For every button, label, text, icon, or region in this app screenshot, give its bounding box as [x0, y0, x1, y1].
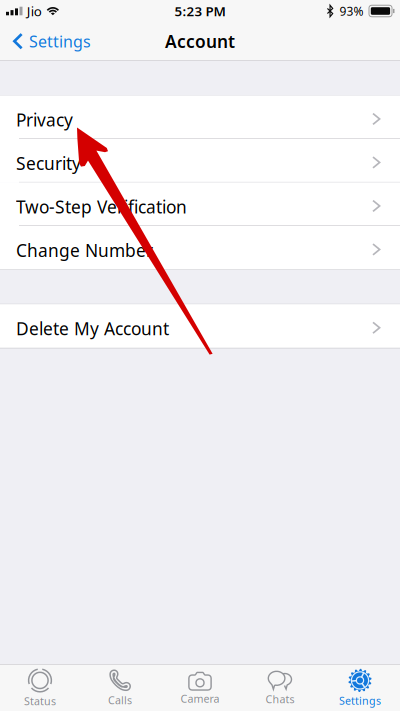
staticText: Chats	[265, 692, 294, 706]
button[interactable]: Status	[0, 665, 80, 711]
staticText: Settings	[339, 693, 381, 708]
staticText: Security	[16, 152, 81, 175]
staticText: Change Number	[16, 239, 153, 262]
staticText: Jio	[27, 2, 42, 20]
staticText: Account	[165, 30, 235, 53]
staticText: Privacy	[16, 108, 73, 131]
button[interactable]: Delete My Account	[0, 304, 400, 348]
button[interactable]: Settings	[320, 665, 400, 711]
staticText: Calls	[108, 693, 132, 707]
staticText: Camera	[180, 691, 219, 706]
staticText: Status	[24, 694, 56, 708]
button[interactable]: Two-Step Verification	[0, 182, 400, 226]
staticText: Delete My Account	[16, 317, 169, 340]
staticText: 93%	[339, 3, 363, 19]
button[interactable]: Security	[0, 139, 400, 182]
button[interactable]: Privacy	[0, 95, 400, 139]
button[interactable]: Calls	[80, 665, 160, 711]
button[interactable]: Settings	[0, 22, 101, 60]
button[interactable]: Change Number	[0, 226, 400, 269]
staticText: Settings	[29, 31, 91, 52]
staticText: Two-Step Verification	[16, 195, 187, 218]
staticText: 5:23 PM	[174, 2, 225, 20]
button[interactable]: Chats	[240, 665, 320, 711]
button[interactable]: Camera	[160, 665, 240, 711]
